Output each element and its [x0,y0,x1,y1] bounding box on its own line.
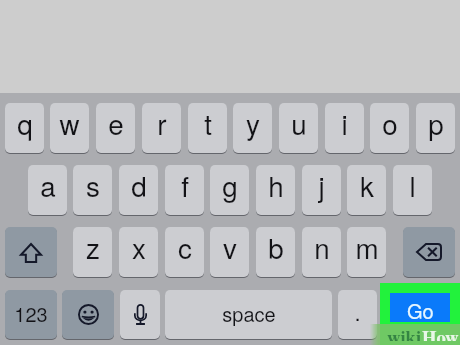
staticText: k [360,165,374,205]
staticText: r [157,103,167,143]
button[interactable]: x [119,227,158,277]
staticText: Go [407,296,434,325]
button[interactable]: h [256,165,295,215]
staticText: i [341,103,348,143]
other: Shift [20,243,42,263]
button[interactable]: r [142,103,181,153]
staticText: q [17,103,33,143]
button[interactable]: z [73,227,112,277]
other: Dictation [134,304,147,325]
staticText: z [86,227,100,267]
staticText: wiki [387,323,422,341]
staticText: s [86,165,100,205]
button[interactable]: 123 [5,290,57,339]
staticText: . [354,296,361,328]
button[interactable]: Go [390,293,450,322]
staticText: o [382,103,398,143]
button[interactable]: . [338,290,377,339]
staticText: v [223,227,237,267]
button[interactable]: Dictation [120,290,160,339]
button[interactable]: space [165,290,332,339]
button[interactable]: n [302,227,341,277]
staticText: m [355,227,379,267]
button[interactable]: u [279,103,318,153]
staticText: j [318,165,325,205]
staticText: c [178,227,192,267]
button[interactable]: w [50,103,89,153]
button[interactable]: v [210,227,249,277]
staticText: f [181,165,189,205]
button[interactable]: Backspace [403,227,455,277]
button[interactable]: s [73,165,112,215]
staticText: How [422,323,459,341]
staticText: e [108,103,124,143]
button[interactable]: f [165,165,204,215]
staticText: 123 [14,299,48,328]
staticText: y [246,103,260,143]
staticText: x [132,227,146,267]
button[interactable]: o [370,103,409,153]
button[interactable]: j [302,165,341,215]
staticText: g [222,165,238,205]
button[interactable]: Emoji [62,290,114,339]
button[interactable]: e [96,103,135,153]
button[interactable]: i [325,103,364,153]
button[interactable]: t [188,103,227,153]
other: Backspace [416,243,442,261]
staticText: n [314,227,330,267]
button[interactable]: l [393,165,432,215]
staticText: w [59,103,80,143]
staticText: p [428,103,444,143]
button[interactable]: q [5,103,44,153]
button[interactable]: a [28,165,67,215]
button[interactable]: k [347,165,386,215]
button[interactable]: y [233,103,272,153]
staticText: space [222,299,276,328]
button[interactable]: Shift [5,227,57,277]
staticText: b [268,227,284,267]
button[interactable]: m [347,227,386,277]
button[interactable]: p [416,103,455,153]
staticText: t [204,103,212,143]
staticText: h [268,165,284,205]
staticText: u [291,103,307,143]
staticText: a [40,165,56,205]
other: Emoji [78,304,99,325]
button[interactable]: c [165,227,204,277]
staticText: l [409,165,416,205]
button[interactable]: g [210,165,249,215]
button[interactable]: b [256,227,295,277]
button[interactable]: d [119,165,158,215]
staticText: d [131,165,147,205]
